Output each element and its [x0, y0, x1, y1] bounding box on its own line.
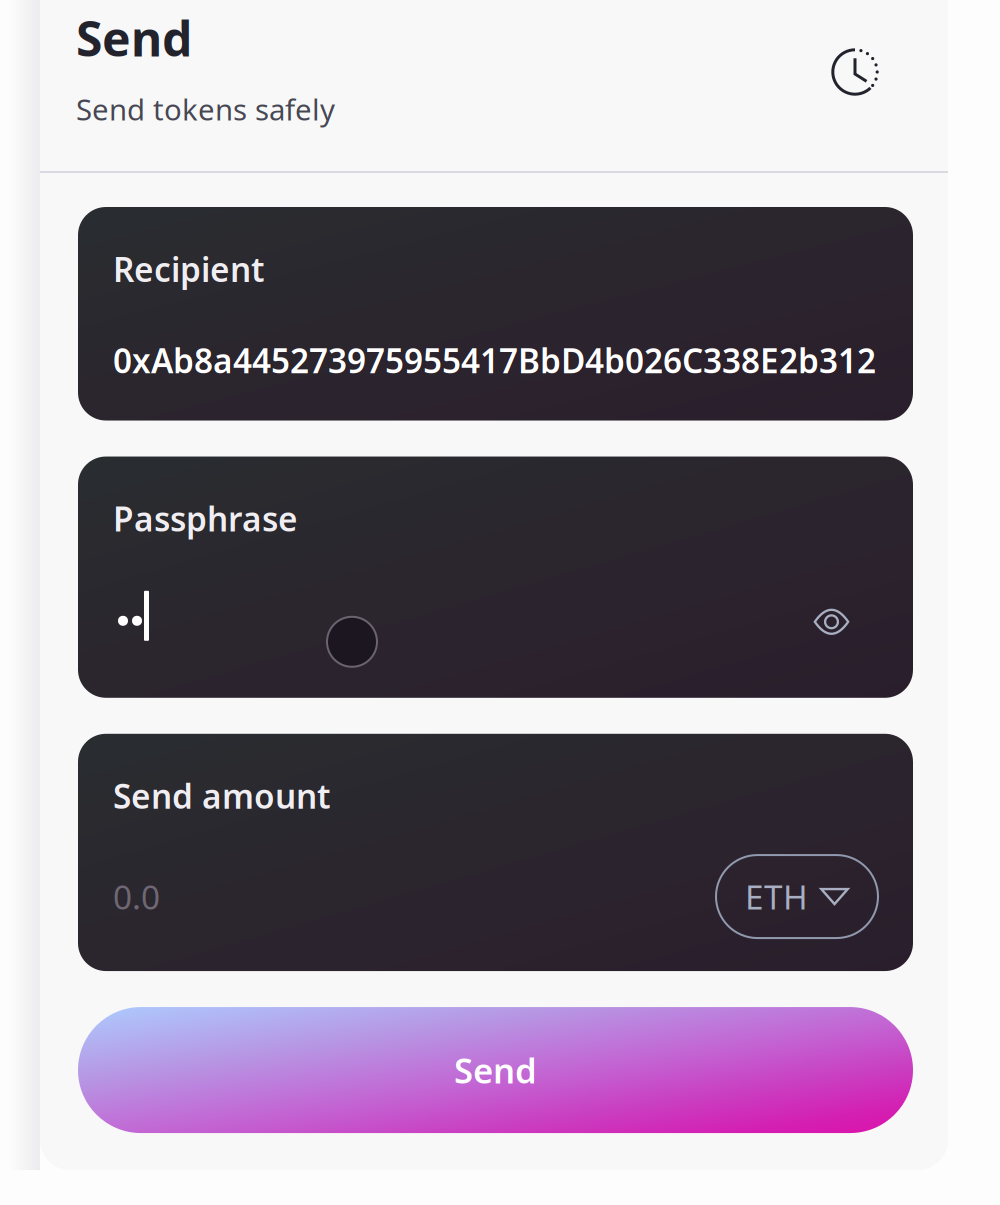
staticText: Recipient — [113, 247, 265, 291]
staticText: Send — [76, 6, 192, 70]
button[interactable]: Show passphrase — [785, 580, 878, 652]
button[interactable]: Transaction history — [818, 35, 892, 109]
button[interactable]: ETH — [716, 855, 878, 938]
staticText: Passphrase — [113, 496, 298, 541]
button[interactable]: Send — [78, 1007, 913, 1133]
staticText: ETH — [745, 874, 808, 919]
staticText: Send — [454, 1047, 537, 1093]
staticText: 0.0 — [113, 874, 160, 919]
staticText: Send amount — [113, 774, 331, 818]
staticText: Send tokens safely — [76, 90, 335, 129]
staticText: 0xAb8a445273975955417BbD4b026C338E2b312 — [113, 338, 876, 383]
